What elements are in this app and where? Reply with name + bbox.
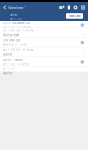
staticText: 2015 DECEMBER LIST (3, 21, 30, 24)
button[interactable]: CSV UNIT LIST (0, 38, 88, 47)
staticText: ver 1.00 · 4 items (3, 62, 28, 66)
button[interactable]: Settings (73, 5, 77, 9)
staticText: ver 1.00 (3, 67, 15, 70)
staticText: ver 1.00 list · 8 items (3, 48, 33, 52)
staticText: Kanzlone (8, 5, 23, 10)
button[interactable]: Menu (81, 5, 85, 9)
button[interactable]: Video (59, 5, 64, 9)
staticText: admin (10, 13, 18, 17)
staticText: absence 3 · note (3, 43, 27, 47)
button[interactable]: LIST 01 · WORK (0, 57, 88, 67)
staticText: Sublist (3, 71, 12, 75)
staticText: ver 1.00 · 12 items (3, 25, 30, 29)
staticText: •• (82, 53, 84, 56)
button[interactable]: ver 1.00 (0, 67, 88, 72)
staticText: •• (82, 33, 84, 37)
staticText: Sublist draft (3, 33, 19, 37)
button[interactable]: ver 1.00 list · 8 items (0, 47, 88, 57)
button[interactable]: Back (1, 4, 8, 11)
staticText: ver 1.00 (10, 17, 22, 21)
staticText: LIST 01 · WORK (3, 58, 23, 61)
staticText: * (24, 6, 25, 9)
button[interactable]: Phone (68, 5, 70, 9)
staticText: NEW ITEM (69, 14, 80, 18)
staticText: •• (82, 71, 84, 75)
staticText: CSV UNIT LIST (3, 38, 20, 42)
staticText: Sublist (3, 53, 12, 56)
button[interactable]: 2015 DECEMBER LIST (0, 21, 88, 28)
staticText: ver 1.00 list · 5 items (3, 29, 33, 32)
button[interactable]: NEW ITEM (66, 13, 83, 19)
button[interactable]: ver 1.00 list · 5 items (0, 28, 88, 38)
